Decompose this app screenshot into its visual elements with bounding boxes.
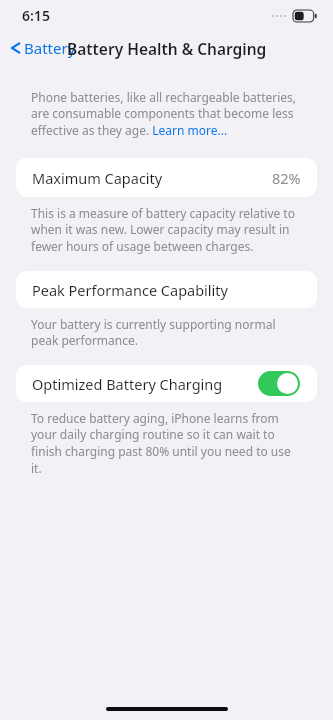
staticText: This is a measure of battery capacity re… bbox=[31, 205, 302, 255]
staticText: Peak Performance Capability bbox=[32, 280, 228, 300]
staticText: Optimized Battery Charging bbox=[32, 374, 223, 394]
staticText: Battery bbox=[24, 38, 76, 58]
staticText: Your battery is currently supporting nor… bbox=[31, 316, 302, 349]
staticText: 6:15 bbox=[22, 6, 50, 25]
staticText: Phone batteries, like all rechargeable b… bbox=[31, 89, 302, 139]
staticText: To reduce battery aging, iPhone learns f… bbox=[31, 410, 302, 477]
staticText: Maximum Capacity bbox=[32, 168, 163, 188]
button[interactable]: Optimized Battery Charging toggle, on bbox=[258, 371, 300, 396]
button[interactable]: Peak Performance Capability bbox=[16, 271, 317, 308]
button[interactable]: Battery bbox=[0, 34, 82, 62]
button[interactable]: Maximum Capacity bbox=[16, 158, 317, 197]
staticText: 82% bbox=[272, 168, 301, 188]
button[interactable]: Optimized Battery Charging bbox=[16, 365, 317, 402]
staticText: Battery Health & Charging bbox=[67, 38, 267, 59]
